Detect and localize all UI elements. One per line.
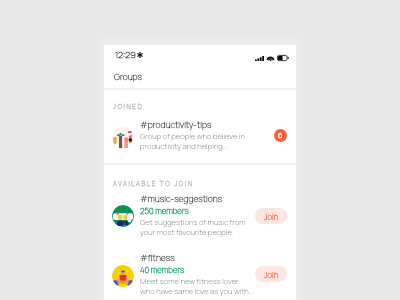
staticText: Group of people who believe in bbox=[140, 131, 245, 142]
staticText: #productivity-tips bbox=[140, 119, 212, 131]
staticText: Get suggestions of music from bbox=[140, 217, 246, 228]
staticText: Join bbox=[264, 269, 279, 280]
staticText: who have same love as you with... bbox=[140, 286, 254, 297]
staticText: 40 members bbox=[140, 264, 185, 275]
staticText: Join bbox=[264, 211, 279, 222]
staticText: productivity and helping... bbox=[140, 141, 228, 152]
staticText: Meet some new fitness lover bbox=[140, 276, 239, 287]
staticText: JOINED bbox=[113, 102, 144, 111]
staticText: 6 bbox=[278, 131, 283, 141]
button[interactable]: Join bbox=[255, 266, 287, 282]
staticText: #music-seggestions bbox=[140, 193, 223, 205]
staticText: #fitness bbox=[140, 252, 175, 264]
staticText: AVAILABLE TO JOIN bbox=[113, 179, 194, 188]
button[interactable]: Join bbox=[255, 208, 287, 224]
staticText: 12:29 bbox=[115, 48, 136, 61]
button[interactable]: Groups bbox=[104, 65, 296, 88]
button[interactable]: #fitness bbox=[104, 252, 296, 298]
button[interactable]: #music-seggestions bbox=[104, 193, 296, 239]
button[interactable]: 6 unread messages bbox=[274, 129, 287, 142]
staticText: Groups bbox=[114, 71, 142, 83]
button[interactable]: #productivity-tips bbox=[104, 119, 296, 165]
staticText: 250 members bbox=[140, 205, 189, 216]
staticText: your most favourite people. bbox=[140, 227, 234, 238]
